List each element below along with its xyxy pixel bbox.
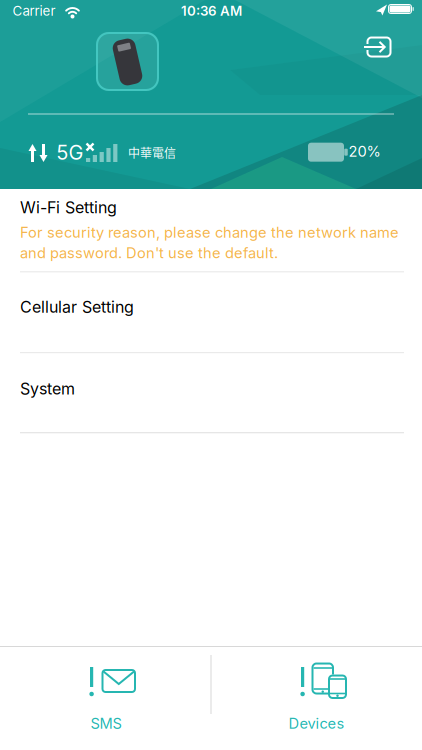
- button[interactable]: Devices: [211, 646, 422, 750]
- staticText: Carrier: [12, 3, 55, 19]
- button[interactable]: Device: [96, 32, 159, 91]
- button[interactable]: System: [0, 353, 422, 433]
- staticText: Cellular Setting: [20, 297, 134, 316]
- button[interactable]: Log out: [362, 32, 396, 62]
- staticText: Wi-Fi Setting: [20, 198, 117, 217]
- staticText: 中華電信: [128, 144, 176, 161]
- button[interactable]: SMS: [0, 646, 211, 750]
- staticText: For security reason, please change the n…: [20, 224, 399, 261]
- staticText: SMS: [90, 715, 121, 732]
- staticText: Devices: [288, 715, 344, 732]
- staticText: 10:36 AM: [181, 3, 242, 19]
- button[interactable]: Wi-Fi Setting: [0, 189, 422, 272]
- staticText: 20%: [348, 143, 380, 160]
- staticText: 5G: [56, 141, 83, 164]
- staticText: System: [20, 379, 75, 398]
- button[interactable]: Cellular Setting: [0, 272, 422, 353]
